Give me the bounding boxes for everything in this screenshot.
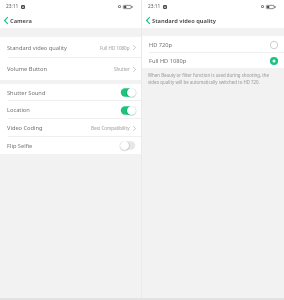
button[interactable]: Toggle off [120,140,136,151]
staticText: Camera [10,17,32,25]
button[interactable]: Shutter Sound [0,84,141,101]
staticText: HD 720p [149,41,173,49]
button[interactable]: Location [0,101,141,119]
other: Selected [269,56,279,66]
button[interactable]: Toggle on [120,105,136,116]
staticText: Flip Selfie [7,142,33,150]
staticText: 23:11 [148,3,161,10]
button[interactable]: Full HD 1080p [142,53,284,68]
button[interactable]: Toggle on [120,87,136,98]
staticText: Standard video quality [152,17,216,25]
button[interactable]: Standard video quality [0,37,141,58]
staticText: Standard video quality [7,44,67,52]
staticText: Full HD 1080p [100,45,130,51]
button[interactable]: Video Coding [0,119,141,137]
staticText: 23:11 [6,3,19,10]
button[interactable]: Volume Button [0,58,141,80]
button[interactable]: Flip Selfie [0,137,141,154]
other: Not selected [269,40,279,50]
button[interactable]: HD 720p [142,36,284,53]
staticText: When Beauty or filter function is used d… [148,72,278,85]
staticText: Shutter Sound [7,89,46,97]
staticText: Location [7,106,30,114]
staticText: Video Coding [7,124,43,132]
button[interactable]: Back [142,13,153,28]
staticText: Shutter [114,66,130,72]
staticText: Best Compatibility [91,125,130,131]
staticText: Volume Button [7,65,47,73]
staticText: Full HD 1080p [149,57,187,65]
button[interactable]: Back [0,13,11,28]
